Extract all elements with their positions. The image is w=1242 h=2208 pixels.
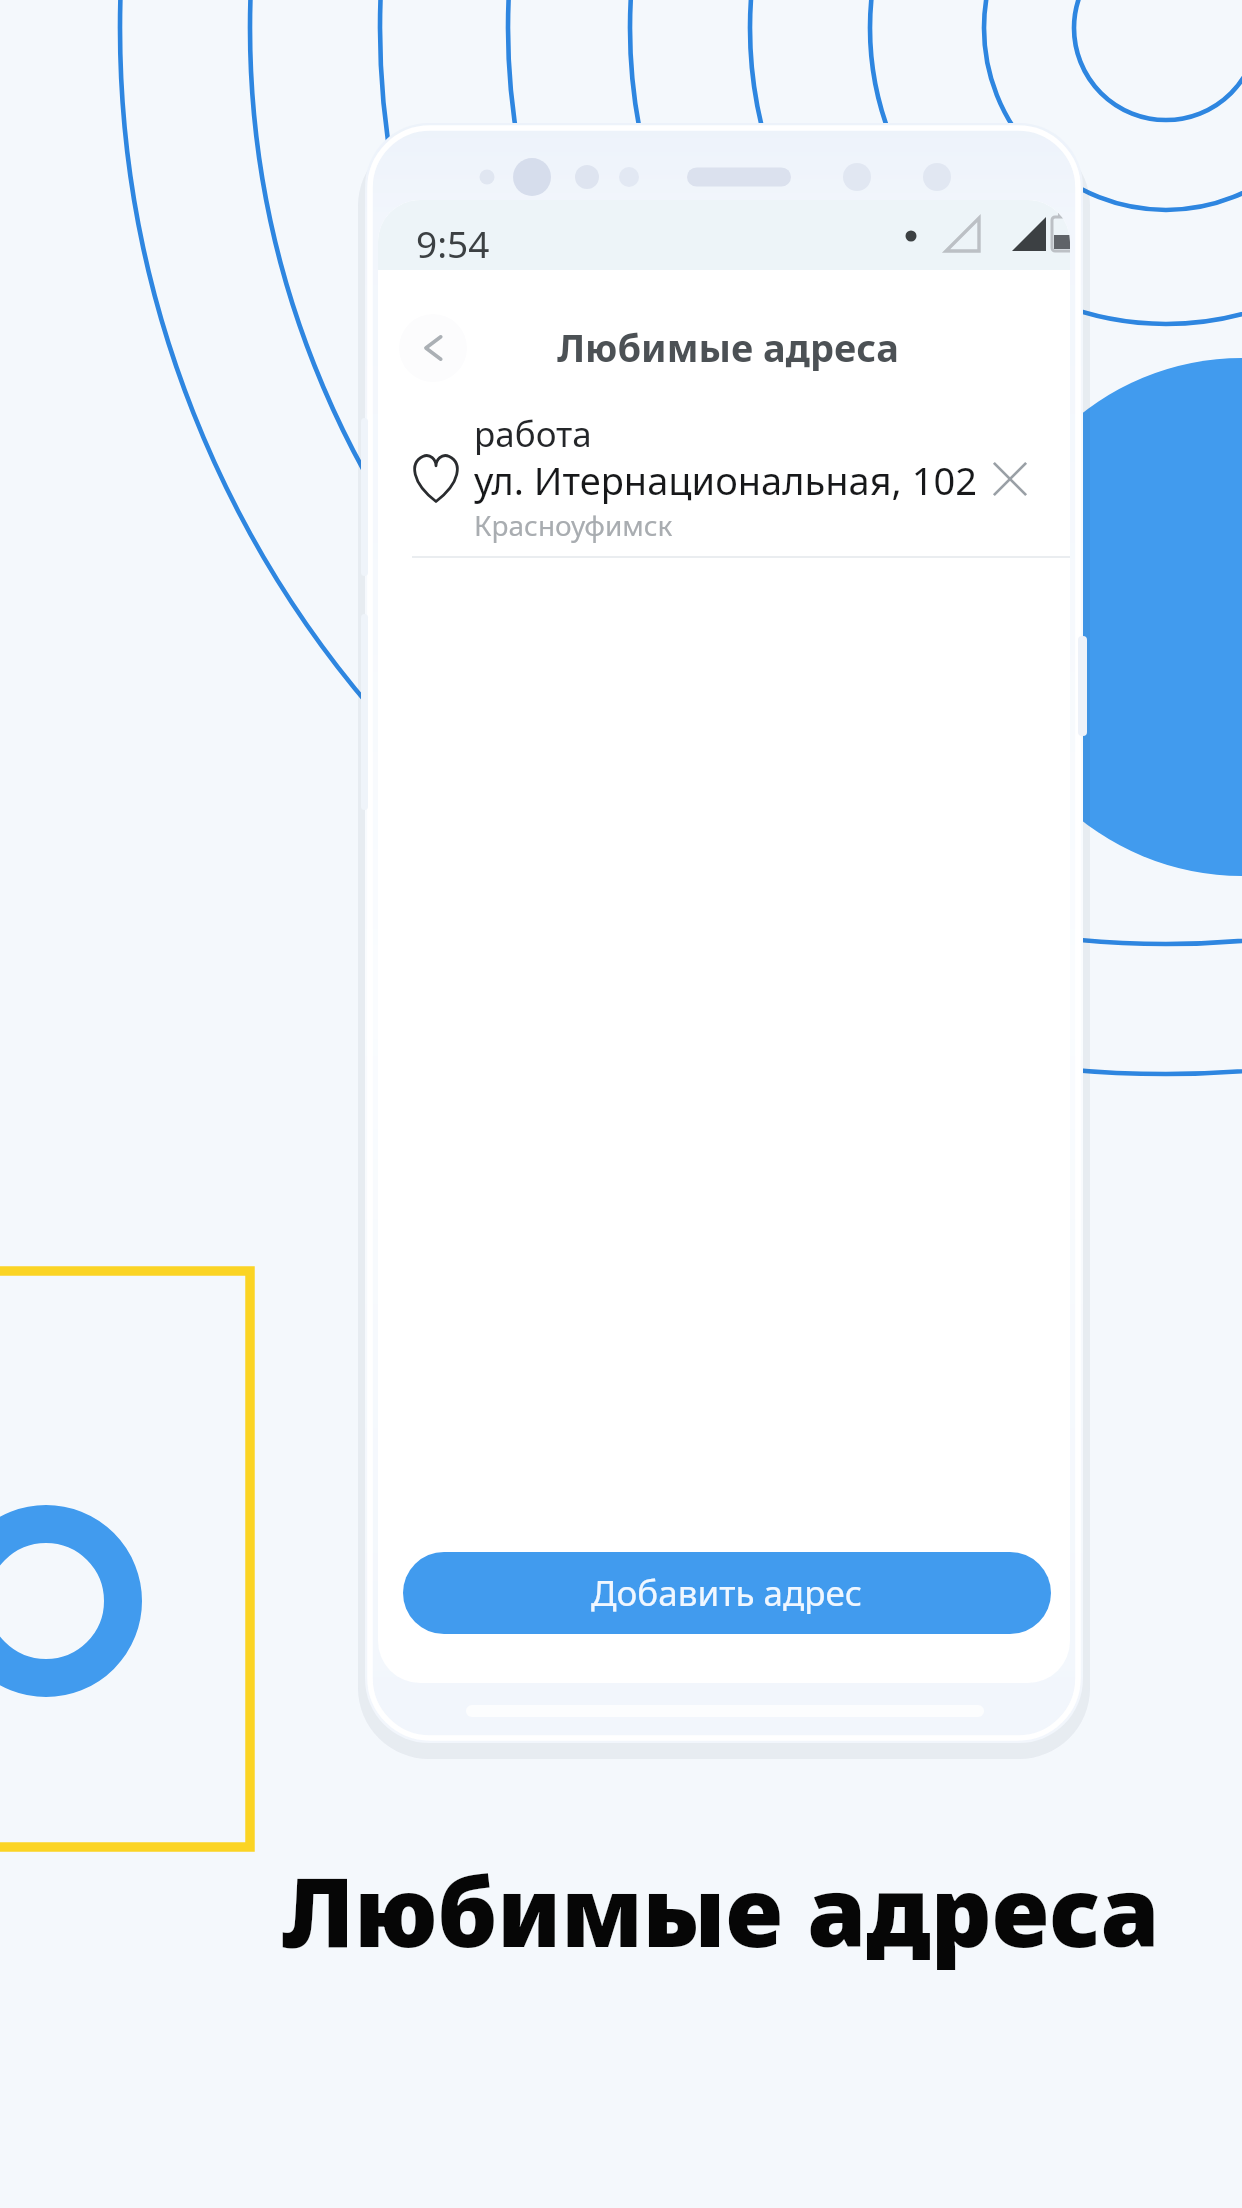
staticText: ул. Итернациональная, 102: [474, 454, 977, 506]
button[interactable]: Назад: [399, 314, 467, 382]
staticText: Любимые адреса: [557, 321, 899, 373]
staticText: работа: [474, 410, 592, 458]
staticText: Добавить адрес: [591, 1569, 863, 1617]
staticText: 9:54: [416, 218, 490, 268]
staticText: Красноуфимск: [474, 506, 673, 544]
button[interactable]: Добавить адрес: [403, 1552, 1051, 1634]
button[interactable]: [392, 398, 1070, 556]
button[interactable]: Удалить адрес: [984, 453, 1036, 505]
staticText: Любимые адреса: [282, 1845, 1160, 1974]
